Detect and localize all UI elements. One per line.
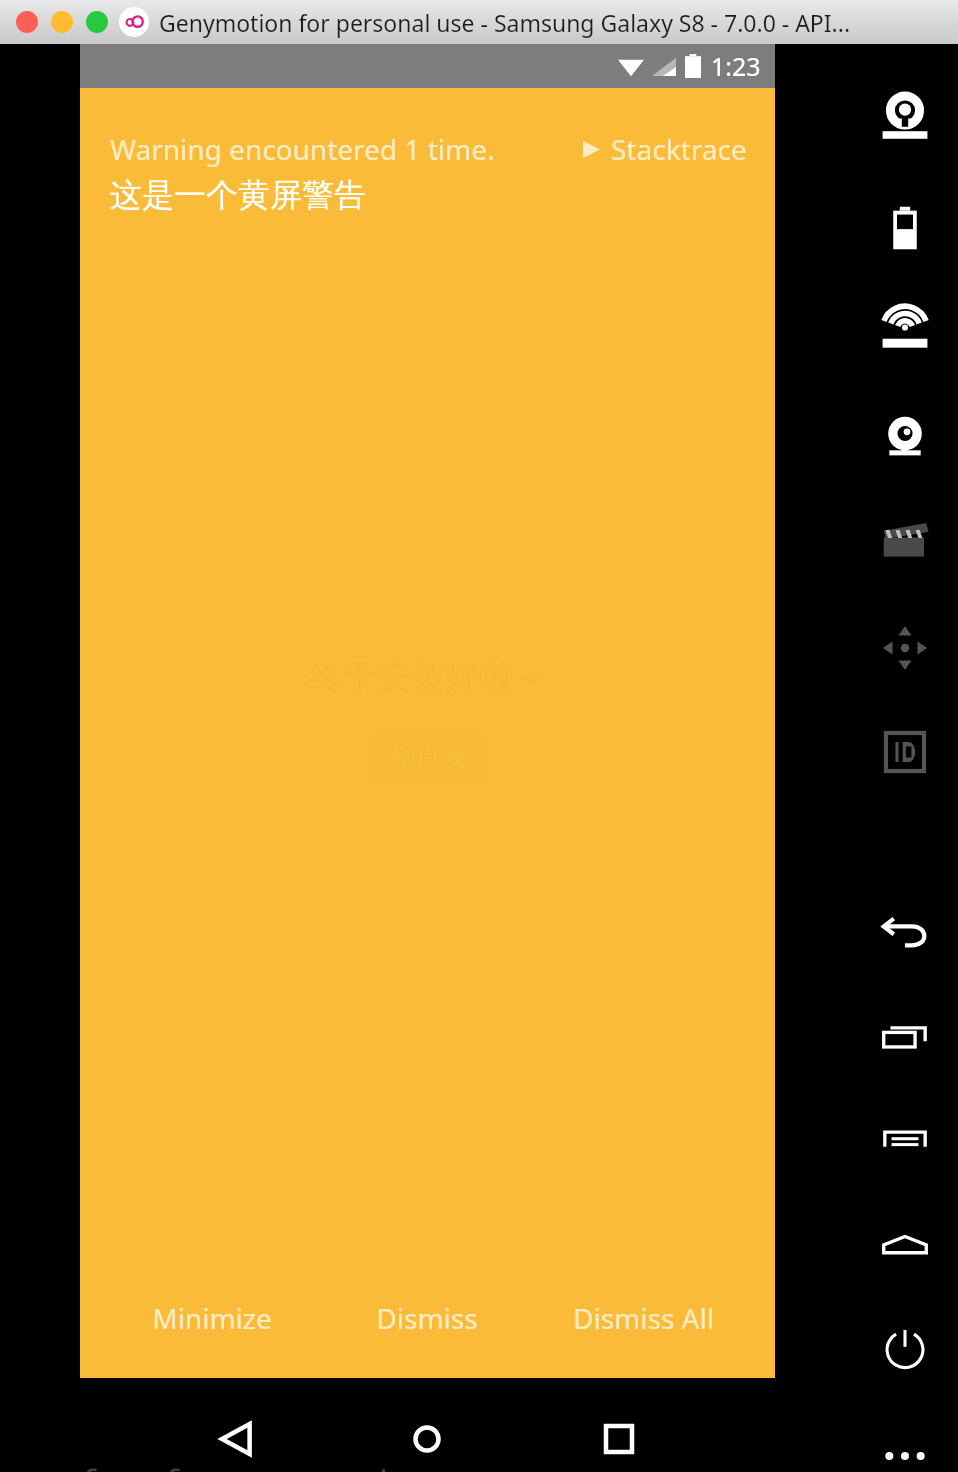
staticText: Genymotion for personal use - Samsung Ga…	[159, 7, 851, 38]
button[interactable]: Home	[396, 1408, 458, 1470]
button[interactable]: Recents	[852, 1002, 958, 1074]
button[interactable]: Stacktrace	[581, 130, 749, 168]
button[interactable]: Virtual sensors	[852, 612, 958, 684]
staticText: Minimize	[152, 1299, 272, 1337]
button[interactable]: Back	[206, 1408, 268, 1470]
button[interactable]: Dismiss	[319, 1270, 535, 1366]
button[interactable]: Recent apps	[588, 1408, 650, 1470]
staticText: free for personal use	[82, 1456, 464, 1472]
button[interactable]: GAPPS	[852, 84, 958, 156]
button[interactable]: Power	[852, 1312, 958, 1384]
button[interactable]: Menu	[852, 1104, 958, 1176]
button[interactable]: GPS	[852, 296, 958, 368]
button[interactable]: Home	[852, 1210, 958, 1282]
staticText: Dismiss All	[573, 1299, 714, 1337]
staticText: 这是一个黄屏警告	[110, 175, 366, 215]
button[interactable]: Battery	[852, 192, 958, 264]
staticText: Warning encountered 1 time.	[110, 130, 495, 168]
button[interactable]: More	[852, 1420, 958, 1472]
staticText: Dismiss	[376, 1299, 478, 1337]
button[interactable]: Screen recorder	[852, 506, 958, 578]
button[interactable]: Identifiers	[852, 716, 958, 788]
button[interactable]: Minimize	[104, 1270, 319, 1366]
staticText: Stacktrace	[611, 130, 747, 168]
staticText: 1:23	[711, 49, 761, 83]
button[interactable]: Back	[852, 896, 958, 968]
button[interactable]: Dismiss All	[535, 1270, 751, 1366]
button[interactable]: Camera	[852, 402, 958, 474]
